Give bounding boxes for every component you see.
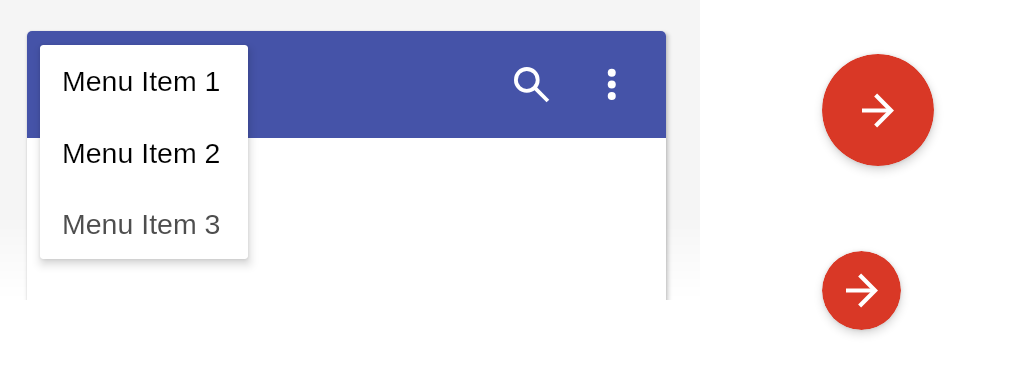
button[interactable]: Menu Item 3 (40, 188, 248, 259)
button[interactable]: Menu Item 1 (40, 45, 248, 117)
button[interactable]: Next (822, 54, 934, 166)
button[interactable]: More options (588, 56, 636, 104)
staticText: Menu Item 3 (62, 208, 221, 240)
button[interactable]: Search (503, 56, 551, 104)
staticText: Menu Item 2 (62, 137, 221, 169)
button[interactable]: Menu Item 2 (40, 117, 248, 189)
button[interactable]: Next (822, 251, 901, 330)
staticText: Menu Item 1 (62, 65, 221, 97)
